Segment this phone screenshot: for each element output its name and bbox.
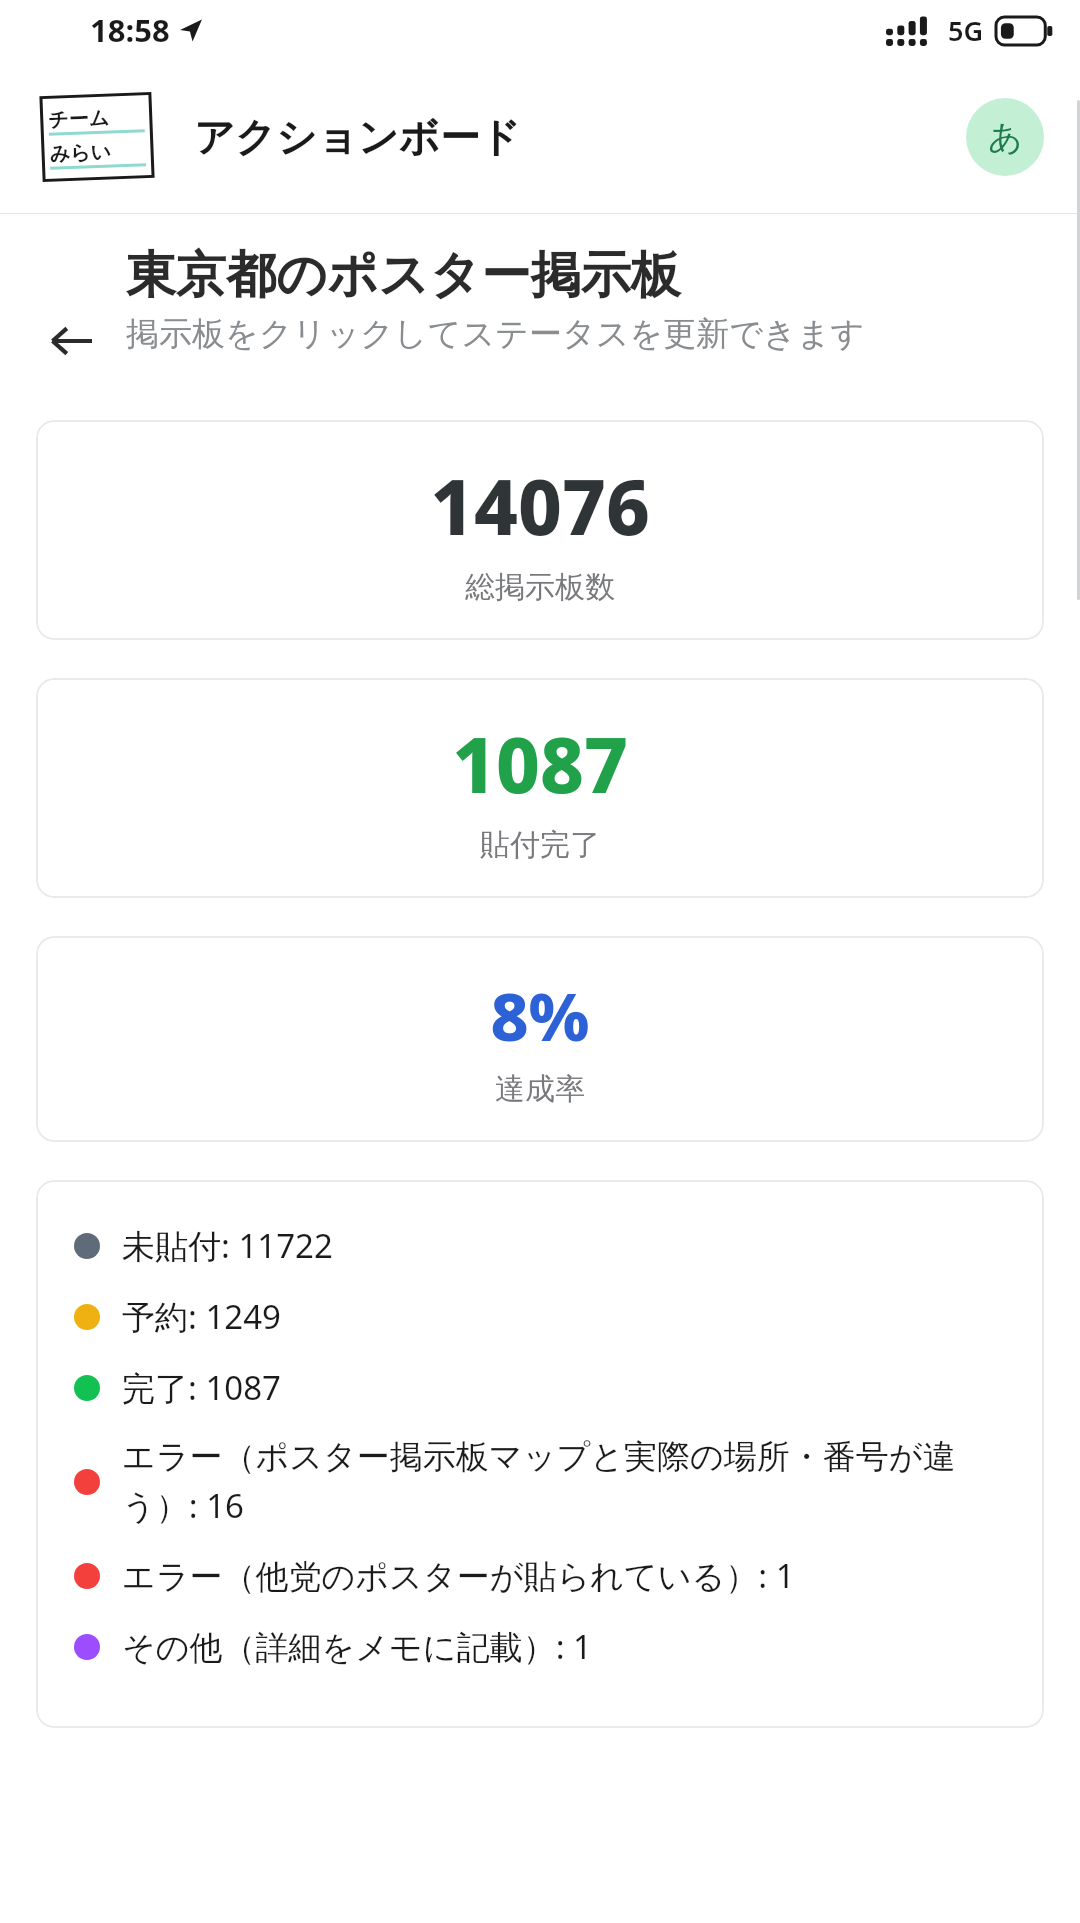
button[interactable]: 14076: [36, 420, 1044, 640]
staticText: 未貼付: 11722: [122, 1223, 333, 1268]
staticText: みらい: [49, 139, 112, 167]
button[interactable]: 未貼付: 11722: [74, 1210, 1014, 1281]
staticText: 14076: [430, 454, 650, 558]
staticText: 予約: 1249: [122, 1294, 281, 1339]
button[interactable]: 完了: 1087: [74, 1352, 1014, 1423]
staticText: 1087: [452, 712, 628, 816]
staticText: 貼付完了: [480, 826, 600, 864]
staticText: チーム: [48, 105, 110, 133]
button[interactable]: 1087: [36, 678, 1044, 898]
button[interactable]: 予約: 1249: [74, 1281, 1014, 1352]
staticText: 掲示板をクリックしてステータスを更新できます: [126, 313, 865, 355]
button[interactable]: エラー（ポスター掲示板マップと実際の場所・番号が違う）: 16: [74, 1423, 1014, 1540]
staticText: その他（詳細をメモに記載）: 1: [122, 1624, 592, 1669]
staticText: あ: [988, 116, 1023, 159]
staticText: 5G: [948, 12, 984, 49]
button[interactable]: Back: [36, 306, 106, 376]
button[interactable]: エラー（他党のポスターが貼られている）: 1: [74, 1540, 1014, 1611]
staticText: 総掲示板数: [465, 568, 615, 606]
button[interactable]: Account: [966, 98, 1044, 176]
button[interactable]: 8%: [36, 936, 1044, 1142]
staticText: 完了: 1087: [122, 1365, 281, 1410]
staticText: アクションボード: [194, 112, 521, 162]
button[interactable]: その他（詳細をメモに記載）: 1: [74, 1611, 1014, 1682]
staticText: 8%: [490, 970, 590, 1060]
staticText: 18:58: [90, 9, 170, 51]
staticText: エラー（他党のポスターが貼られている）: 1: [122, 1553, 795, 1598]
staticText: エラー（ポスター掲示板マップと実際の場所・番号が違う）: 16: [122, 1436, 1014, 1527]
staticText: 東京都のポスター掲示板: [126, 244, 681, 307]
staticText: 達成率: [495, 1070, 585, 1108]
